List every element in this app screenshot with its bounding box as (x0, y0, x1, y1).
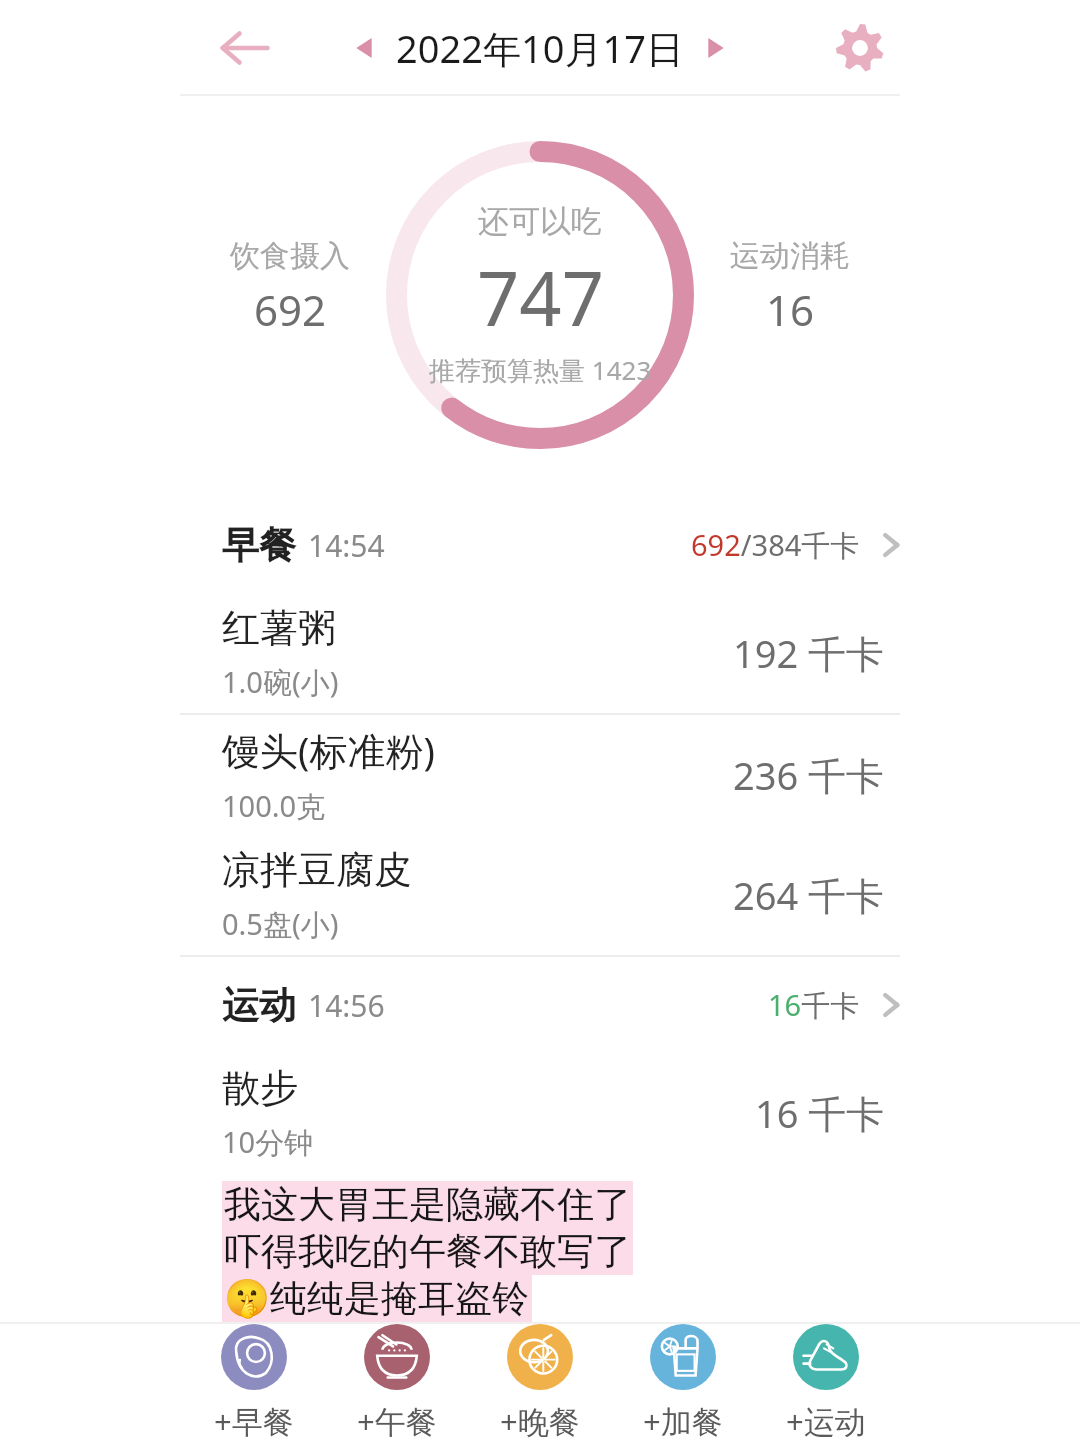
staticText: 16 千卡 (755, 1087, 885, 1139)
button[interactable]: 早餐 (0, 497, 1080, 593)
button[interactable]: +早餐 (190, 1324, 318, 1439)
staticText: 早餐 (222, 522, 296, 569)
staticText: 10分钟 (222, 1122, 314, 1162)
staticText: 我这大胃王是隐藏不住了 (224, 1181, 631, 1228)
button[interactable]: 凉拌豆腐皮 (0, 835, 1080, 955)
staticText: 🤫纯纯是掩耳盗铃 (224, 1275, 530, 1322)
staticText: 16千卡 (768, 985, 860, 1025)
button[interactable]: Next day (694, 26, 738, 70)
staticText: 2022年10月17日 (396, 22, 684, 74)
staticText: 692/384千卡 (691, 525, 860, 565)
staticText: 馒头(标准粉) (222, 724, 435, 776)
button[interactable]: 我这大胃王是隐藏不住了 (222, 1181, 1080, 1322)
staticText: 饮食摄入 (230, 237, 350, 275)
button[interactable]: 红薯粥 (0, 593, 1080, 713)
staticText: 吓得我吃的午餐不敢写了 (224, 1228, 631, 1275)
button[interactable]: 运动 (0, 957, 1080, 1053)
staticText: 14:56 (308, 985, 385, 1026)
staticText: +午餐 (357, 1400, 437, 1439)
button[interactable]: Back (196, 0, 292, 96)
button[interactable]: Previous day (342, 26, 386, 70)
button[interactable]: +运动 (762, 1324, 890, 1439)
staticText: 红薯粥 (222, 604, 336, 652)
staticText: 14:54 (308, 525, 385, 566)
staticText: 1.0碗(小) (222, 662, 339, 702)
staticText: 747 (477, 247, 604, 348)
staticText: 运动 (222, 982, 296, 1029)
staticText: +晚餐 (500, 1400, 580, 1439)
staticText: +加餐 (643, 1400, 723, 1439)
staticText: 散步 (222, 1064, 298, 1112)
staticText: 100.0克 (222, 786, 326, 826)
button[interactable]: +午餐 (333, 1324, 461, 1439)
staticText: 凉拌豆腐皮 (222, 846, 412, 894)
staticText: 16 (766, 281, 815, 338)
staticText: 192 千卡 (733, 627, 885, 679)
button[interactable]: 馒头(标准粉) (0, 715, 1080, 835)
staticText: 推荐预算热量 1423 (429, 352, 652, 388)
button[interactable]: +晚餐 (476, 1324, 604, 1439)
button[interactable]: +加餐 (619, 1324, 747, 1439)
staticText: 还可以吃 (478, 202, 602, 241)
staticText: +运动 (786, 1400, 866, 1439)
staticText: 0.5盘(小) (222, 904, 339, 944)
staticText: 236 千卡 (733, 749, 885, 801)
button[interactable]: 散步 (0, 1053, 1080, 1173)
button[interactable]: Settings (816, 4, 904, 92)
staticText: +早餐 (214, 1400, 294, 1439)
staticText: 692 (254, 281, 327, 338)
staticText: 264 千卡 (733, 869, 885, 921)
staticText: 运动消耗 (730, 237, 850, 275)
